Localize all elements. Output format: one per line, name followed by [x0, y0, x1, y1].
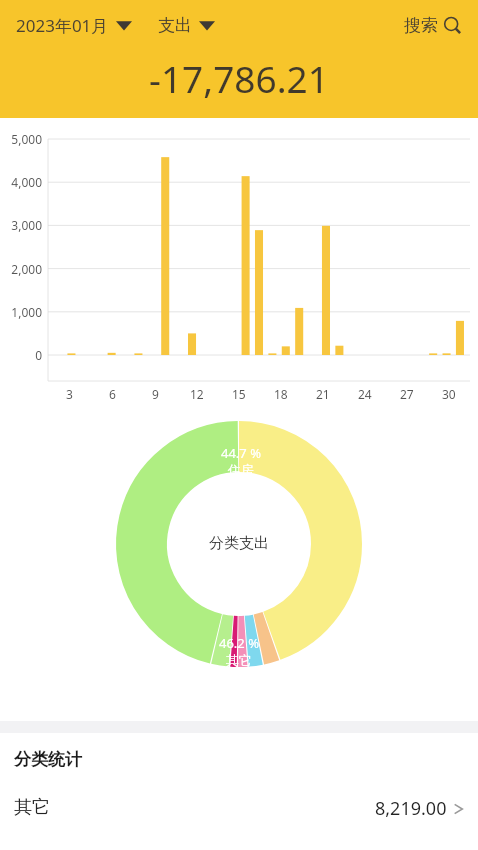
- staticText: 2,000: [0, 261, 42, 277]
- staticText: 30: [442, 386, 456, 402]
- staticText: 搜索: [404, 15, 438, 36]
- staticText: 3: [66, 386, 73, 402]
- button[interactable]: 搜索: [402, 11, 464, 40]
- staticText: 1,000: [0, 304, 42, 320]
- staticText: 2023年01月: [16, 14, 109, 37]
- staticText: 15: [232, 386, 246, 402]
- staticText: 21: [316, 386, 330, 402]
- staticText: 4,000: [0, 174, 42, 190]
- staticText: 5,000: [0, 131, 42, 147]
- button[interactable]: 2023年01月: [14, 10, 134, 41]
- button[interactable]: 支出: [156, 11, 217, 40]
- staticText: 44.7 %: [221, 444, 261, 462]
- staticText: 分类统计: [14, 749, 82, 770]
- staticText: 住房: [228, 462, 254, 478]
- staticText: 12: [190, 386, 204, 402]
- button[interactable]: 其它: [0, 792, 478, 825]
- staticText: 9: [152, 386, 159, 402]
- staticText: 24: [358, 386, 372, 402]
- staticText: 其它: [226, 652, 252, 668]
- staticText: 分类支出: [209, 534, 269, 553]
- staticText: 46.2 %: [219, 634, 259, 652]
- staticText: 18: [274, 386, 288, 402]
- staticText: 其它: [14, 796, 50, 819]
- button[interactable]: 分类支出饼图: [0, 408, 478, 708]
- staticText: -17,786.21: [149, 53, 329, 103]
- staticText: 支出: [158, 15, 192, 36]
- staticText: 6: [109, 386, 116, 402]
- staticText: 27: [400, 386, 414, 402]
- staticText: 8,219.00: [375, 796, 447, 821]
- staticText: 0: [0, 347, 42, 363]
- staticText: 3,000: [0, 217, 42, 233]
